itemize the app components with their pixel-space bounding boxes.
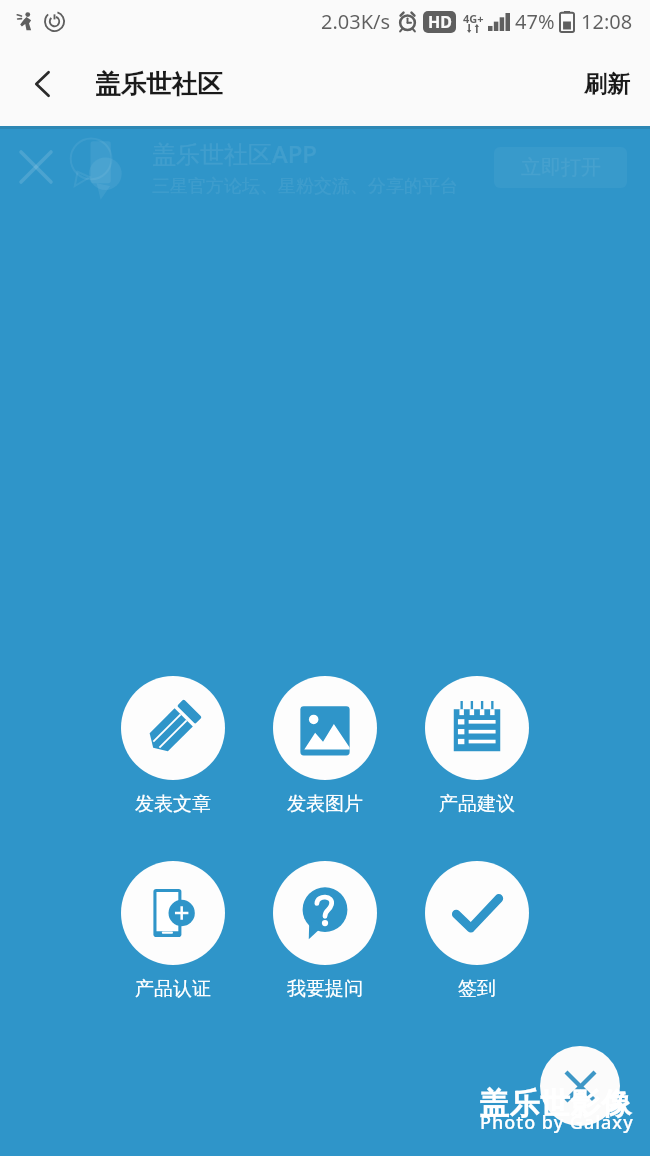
staticText: 4G+ — [463, 11, 484, 26]
staticText: 刷新 — [584, 70, 630, 99]
button[interactable]: 立即打开 — [494, 147, 627, 188]
staticText: 发表图片 — [287, 792, 363, 816]
button[interactable]: 签到 — [425, 861, 529, 1001]
staticText: 我要提问 — [287, 977, 363, 1001]
staticText: 产品建议 — [439, 792, 515, 816]
staticText: 47% — [515, 8, 555, 35]
button[interactable]: 产品认证 — [121, 861, 225, 1001]
button[interactable]: 刷新 — [574, 62, 640, 107]
staticText: 盖乐世社区 — [95, 68, 223, 100]
staticText: 三星官方论坛、星粉交流、分享的平台 — [152, 175, 458, 198]
button[interactable]: 发表图片 — [273, 676, 377, 816]
button[interactable]: 发表文章 — [121, 676, 225, 816]
staticText: 产品认证 — [135, 977, 211, 1001]
button[interactable]: 我要提问 — [273, 861, 377, 1001]
staticText: 盖乐世社区APP — [152, 137, 317, 170]
button[interactable]: Close — [540, 1046, 620, 1126]
staticText: Photo by Galaxy — [480, 1110, 634, 1135]
button[interactable]: Back — [18, 59, 68, 109]
staticText: 2.03K/s — [321, 8, 391, 35]
staticText: 12:08 — [581, 8, 633, 35]
button[interactable]: Close banner — [11, 142, 61, 192]
staticText: 盖乐世影像 — [479, 1085, 632, 1123]
staticText: 签到 — [458, 977, 496, 1001]
staticText: 立即打开 — [521, 155, 601, 180]
staticText: HD — [428, 11, 452, 33]
staticText: 发表文章 — [135, 792, 211, 816]
button[interactable]: 产品建议 — [425, 676, 529, 816]
